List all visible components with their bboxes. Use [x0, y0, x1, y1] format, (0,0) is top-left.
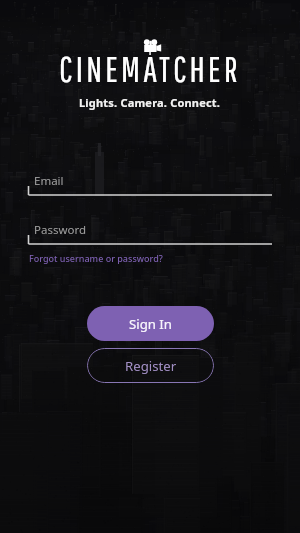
button[interactable]: Forgot username or password? — [29, 251, 163, 265]
staticText: Register — [125, 357, 177, 375]
staticText: Forgot username or password? — [29, 252, 163, 264]
staticText: Sign In — [129, 315, 172, 333]
staticText: Password — [34, 222, 87, 238]
button[interactable]: Password — [0, 217, 300, 248]
button[interactable]: Email — [0, 168, 300, 199]
staticText: Lights. Camera. Connect. — [79, 95, 221, 110]
button[interactable]: Sign In — [87, 306, 214, 341]
staticText: CINEMATCHER — [25, 49, 275, 89]
staticText: Email — [34, 173, 64, 189]
button[interactable]: Register — [87, 348, 214, 383]
